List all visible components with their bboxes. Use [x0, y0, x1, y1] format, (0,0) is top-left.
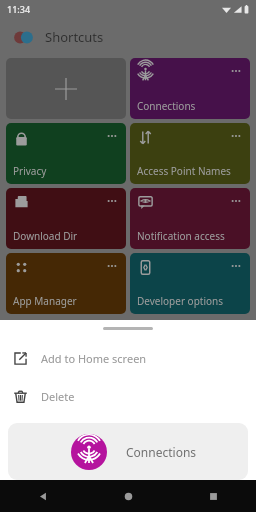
button[interactable]: Delete [0, 380, 256, 413]
staticText: App Manager [13, 294, 77, 308]
button[interactable]: Download Dir [6, 188, 126, 249]
staticText: 11:34 [7, 3, 31, 15]
staticText: Download Dir [13, 229, 78, 243]
button[interactable]: Developer options [130, 253, 250, 314]
button[interactable]: App Manager [6, 253, 126, 314]
staticText: Delete [41, 389, 75, 404]
button[interactable]: Access Point Names [130, 123, 250, 184]
button[interactable]: Connections [8, 423, 248, 480]
button[interactable]: Connections [130, 58, 250, 119]
button[interactable]: Home [86, 480, 171, 512]
staticText: Access Point Names [137, 164, 231, 178]
button[interactable]: Recents [171, 480, 256, 512]
staticText: Notification access [137, 229, 225, 243]
button[interactable]: Notification access [130, 188, 250, 249]
button[interactable]: Privacy [6, 123, 126, 184]
button[interactable]: Back [0, 480, 86, 512]
other: Delete [13, 389, 28, 404]
staticText: Developer options [137, 294, 224, 308]
staticText: Connections [126, 444, 197, 460]
staticText: Connections [137, 99, 196, 113]
other: Add to Home screen [13, 351, 28, 366]
button[interactable]: Add shortcut [6, 58, 126, 119]
staticText: Shortcuts [45, 28, 104, 46]
staticText: Add to Home screen [41, 351, 147, 366]
staticText: Privacy [13, 164, 47, 178]
button[interactable]: Add to Home screen [0, 342, 256, 375]
other: App icon [13, 27, 34, 48]
